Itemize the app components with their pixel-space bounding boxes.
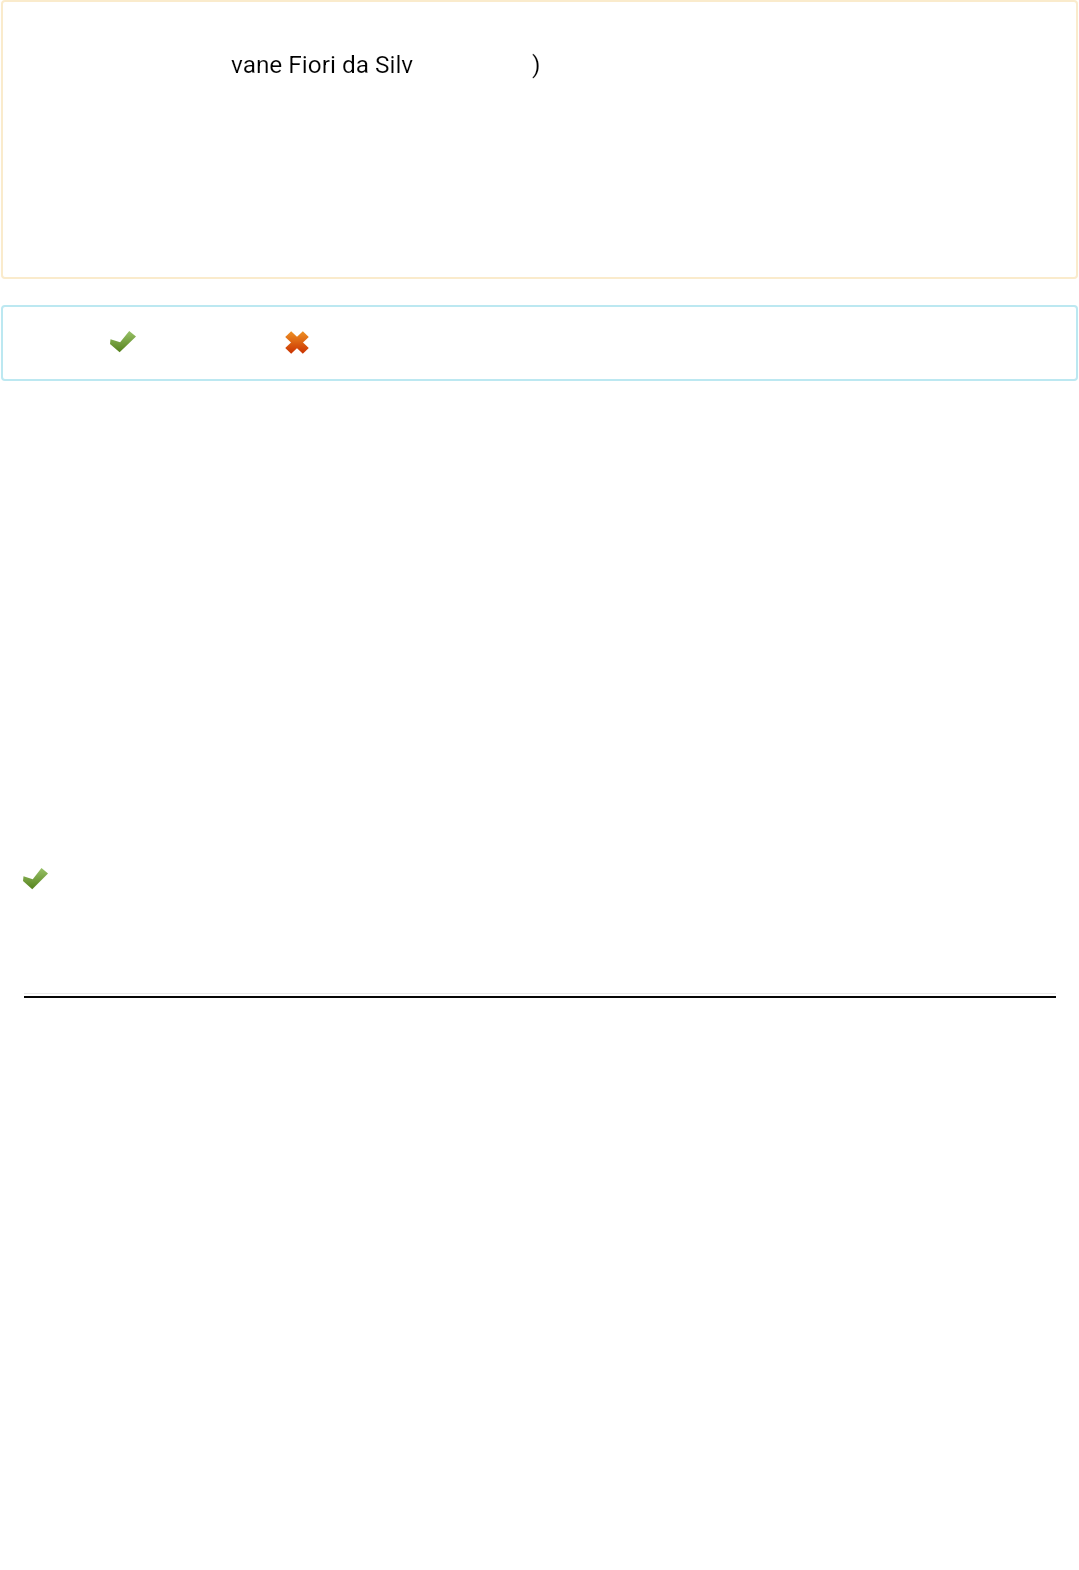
button[interactable] [1,0,1078,279]
button[interactable]: Yes [110,331,136,353]
staticText: ) [532,50,541,79]
button[interactable]: Confirmed [23,868,48,890]
staticText: vane Fiori da Silv [231,50,414,79]
button[interactable] [1,305,1078,381]
button[interactable]: No [286,331,308,354]
